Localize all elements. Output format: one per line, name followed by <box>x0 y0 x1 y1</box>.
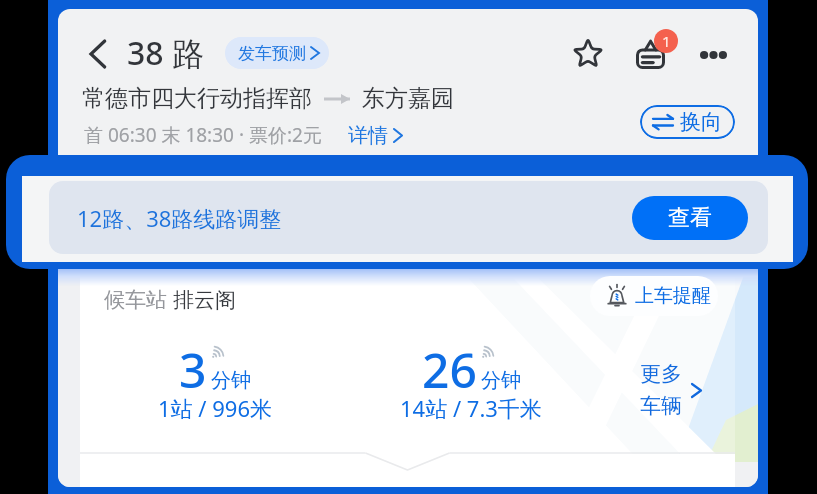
staticText: 车辆 <box>640 393 682 419</box>
button[interactable]: Back <box>78 34 118 74</box>
staticText: 分钟 <box>481 368 521 393</box>
staticText: 发车预测 <box>238 43 306 64</box>
button[interactable]: 上车提醒 <box>590 276 718 316</box>
button[interactable]: More options <box>687 29 739 81</box>
staticText: 常德市四大行动指挥部 <box>82 84 312 113</box>
staticText: 候车站 <box>104 285 173 314</box>
staticText: 26 <box>422 337 477 402</box>
button[interactable]: 发车预测 <box>225 37 329 69</box>
button[interactable]: Favorite <box>564 29 612 77</box>
button[interactable]: 更多 <box>634 355 707 425</box>
staticText: 12路、38路线路调整 <box>77 203 282 233</box>
staticText: 详情 <box>348 123 388 148</box>
staticText: 上车提醒 <box>635 284 711 308</box>
staticText: 首 06:30 末 18:30 · 票价:2元 <box>84 122 322 148</box>
staticText: 查看 <box>668 204 712 232</box>
staticText: 3 <box>179 337 207 402</box>
staticText: 1站 / 996米 <box>158 393 272 423</box>
staticText: 东方嘉园 <box>362 84 454 113</box>
staticText: 14站 / 7.3千米 <box>400 393 542 423</box>
button[interactable]: 查看 <box>632 196 748 240</box>
staticText: 1 <box>662 31 671 51</box>
staticText: 更多 <box>640 361 682 387</box>
button[interactable]: 12路、38路线路调整 <box>49 181 768 254</box>
button[interactable]: Messages <box>629 29 681 81</box>
button[interactable]: 换向 <box>640 105 735 139</box>
staticText: 换向 <box>680 109 722 135</box>
staticText: 38 路 <box>127 31 204 75</box>
staticText: 分钟 <box>211 368 251 393</box>
button[interactable]: 详情 <box>348 123 402 148</box>
staticText: 排云阁 <box>173 287 236 313</box>
